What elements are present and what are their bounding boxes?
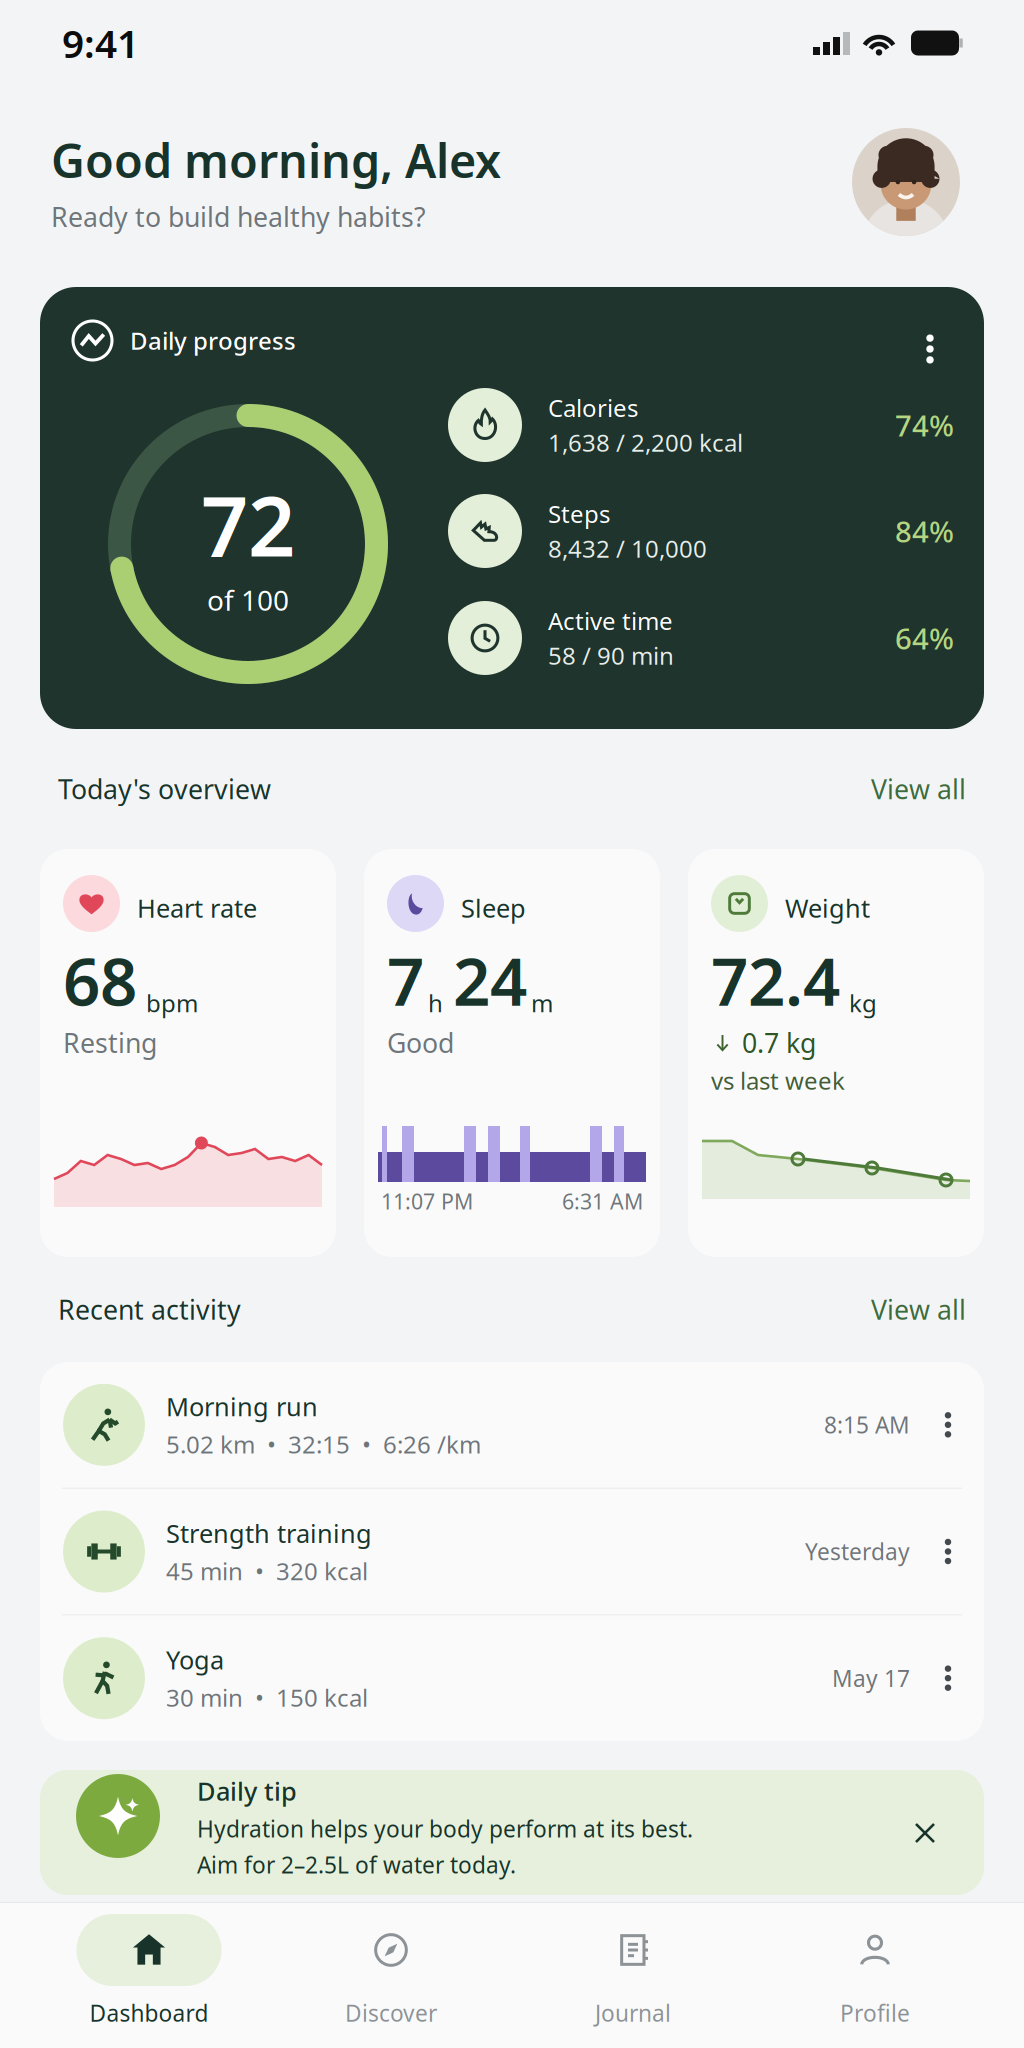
staticText: Strength training xyxy=(166,1516,372,1550)
staticText: 72 xyxy=(201,469,295,579)
staticText: 9:41 xyxy=(62,17,139,69)
button[interactable]: Yoga xyxy=(40,1615,984,1741)
button[interactable]: Dismiss tip xyxy=(900,1808,950,1858)
staticText: Dashboard xyxy=(89,1998,208,2028)
staticText: Ready to build healthy habits? xyxy=(51,199,426,234)
staticText: Heart rate xyxy=(137,891,257,925)
staticText: of 100 xyxy=(207,581,289,618)
staticText: Steps xyxy=(548,498,610,529)
button[interactable]: More options xyxy=(906,325,954,373)
staticText: Hydration helps your body perform at its… xyxy=(197,1814,693,1844)
staticText: View all xyxy=(871,1292,966,1327)
staticText: Good morning, Alex xyxy=(51,129,501,191)
button[interactable]: View all xyxy=(871,1292,966,1327)
staticText: 64% xyxy=(895,618,954,657)
button[interactable]: Profile xyxy=(754,1914,996,2028)
staticText: View all xyxy=(871,771,966,807)
button[interactable]: Journal xyxy=(512,1914,754,2028)
staticText: Sleep xyxy=(461,891,526,925)
staticText: Calories xyxy=(548,392,638,423)
staticText: 5.02 km • 32:15 • 6:26 /km xyxy=(166,1428,481,1460)
staticText: 7 xyxy=(387,937,424,1024)
staticText: 74% xyxy=(895,405,954,444)
staticText: 8,432 / 10,000 xyxy=(548,532,707,564)
staticText: Aim for 2–2.5L of water today. xyxy=(197,1850,516,1880)
staticText: 0.7 kg xyxy=(742,1025,816,1060)
staticText: 8:15 AM xyxy=(824,1410,910,1440)
staticText: h xyxy=(428,987,443,1019)
staticText: Good xyxy=(387,1025,454,1060)
staticText: m xyxy=(531,987,553,1019)
staticText: Yesterday xyxy=(805,1536,910,1566)
staticText: Resting xyxy=(63,1025,157,1060)
button[interactable]: Discover xyxy=(270,1914,512,2028)
staticText: 68 xyxy=(63,937,137,1024)
staticText: 11:07 PM xyxy=(381,1187,473,1215)
staticText: bpm xyxy=(146,987,198,1019)
staticText: 84% xyxy=(895,511,954,550)
staticText: May 17 xyxy=(832,1663,910,1693)
button[interactable]: Morning run xyxy=(40,1362,984,1488)
staticText: 45 min • 320 kcal xyxy=(166,1555,368,1587)
staticText: Journal xyxy=(595,1998,671,2028)
button[interactable]: Dashboard xyxy=(28,1914,270,2028)
staticText: Weight xyxy=(785,891,870,925)
staticText: 6:31 AM xyxy=(562,1187,643,1215)
staticText: Profile xyxy=(840,1998,910,2028)
button[interactable]: Profile xyxy=(852,128,960,236)
staticText: 1,638 / 2,200 kcal xyxy=(548,426,743,458)
staticText: vs last week xyxy=(711,1064,845,1096)
staticText: kg xyxy=(849,987,877,1019)
staticText: 24 xyxy=(453,937,527,1024)
staticText: 30 min • 150 kcal xyxy=(166,1682,368,1713)
staticText: Active time xyxy=(548,605,673,636)
staticText: 58 / 90 min xyxy=(548,639,674,671)
staticText: 72.4 xyxy=(711,937,840,1024)
staticText: Daily tip xyxy=(197,1774,297,1808)
button[interactable]: View all xyxy=(871,771,966,807)
staticText: Yoga xyxy=(166,1643,224,1676)
staticText: Today's overview xyxy=(58,771,271,807)
staticText: Morning run xyxy=(166,1390,318,1423)
staticText: Discover xyxy=(345,1998,437,2028)
button[interactable]: Strength training xyxy=(40,1489,984,1614)
staticText: Recent activity xyxy=(58,1292,241,1327)
staticText: Daily progress xyxy=(130,325,296,356)
